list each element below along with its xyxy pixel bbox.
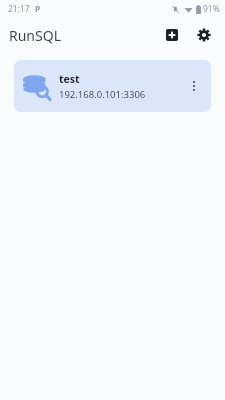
staticText: P [35,3,41,15]
staticText: 91% [203,3,220,15]
button[interactable]: Settings [191,22,217,48]
staticText: 192.168.0.101:3306 [59,88,146,101]
button[interactable]: More options [182,74,206,98]
button[interactable]: test [14,60,211,112]
staticText: 21:17 [8,3,30,15]
staticText: test [59,72,80,86]
button[interactable]: Add connection [159,22,185,48]
staticText: RunSQL [9,26,61,45]
